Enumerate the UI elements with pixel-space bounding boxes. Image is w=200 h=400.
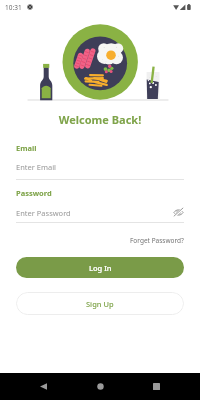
staticText: Password — [16, 188, 52, 198]
button[interactable]: Recents — [143, 373, 170, 400]
staticText: 10:31 — [5, 3, 22, 12]
button[interactable]: Home — [87, 373, 114, 400]
staticText: Sign Up — [86, 299, 114, 309]
button[interactable]: Show password — [173, 207, 184, 218]
staticText: Enter Email — [16, 162, 57, 172]
staticText: Welcome Back! — [0, 112, 200, 127]
button[interactable]: Log In — [16, 257, 184, 278]
staticText: Log In — [89, 263, 112, 273]
button[interactable]: Back — [30, 373, 57, 400]
button[interactable]: Forget Password? — [130, 236, 184, 245]
button[interactable]: Sign Up — [16, 292, 184, 315]
staticText: Enter Password — [16, 208, 71, 218]
staticText: Email — [16, 143, 37, 153]
